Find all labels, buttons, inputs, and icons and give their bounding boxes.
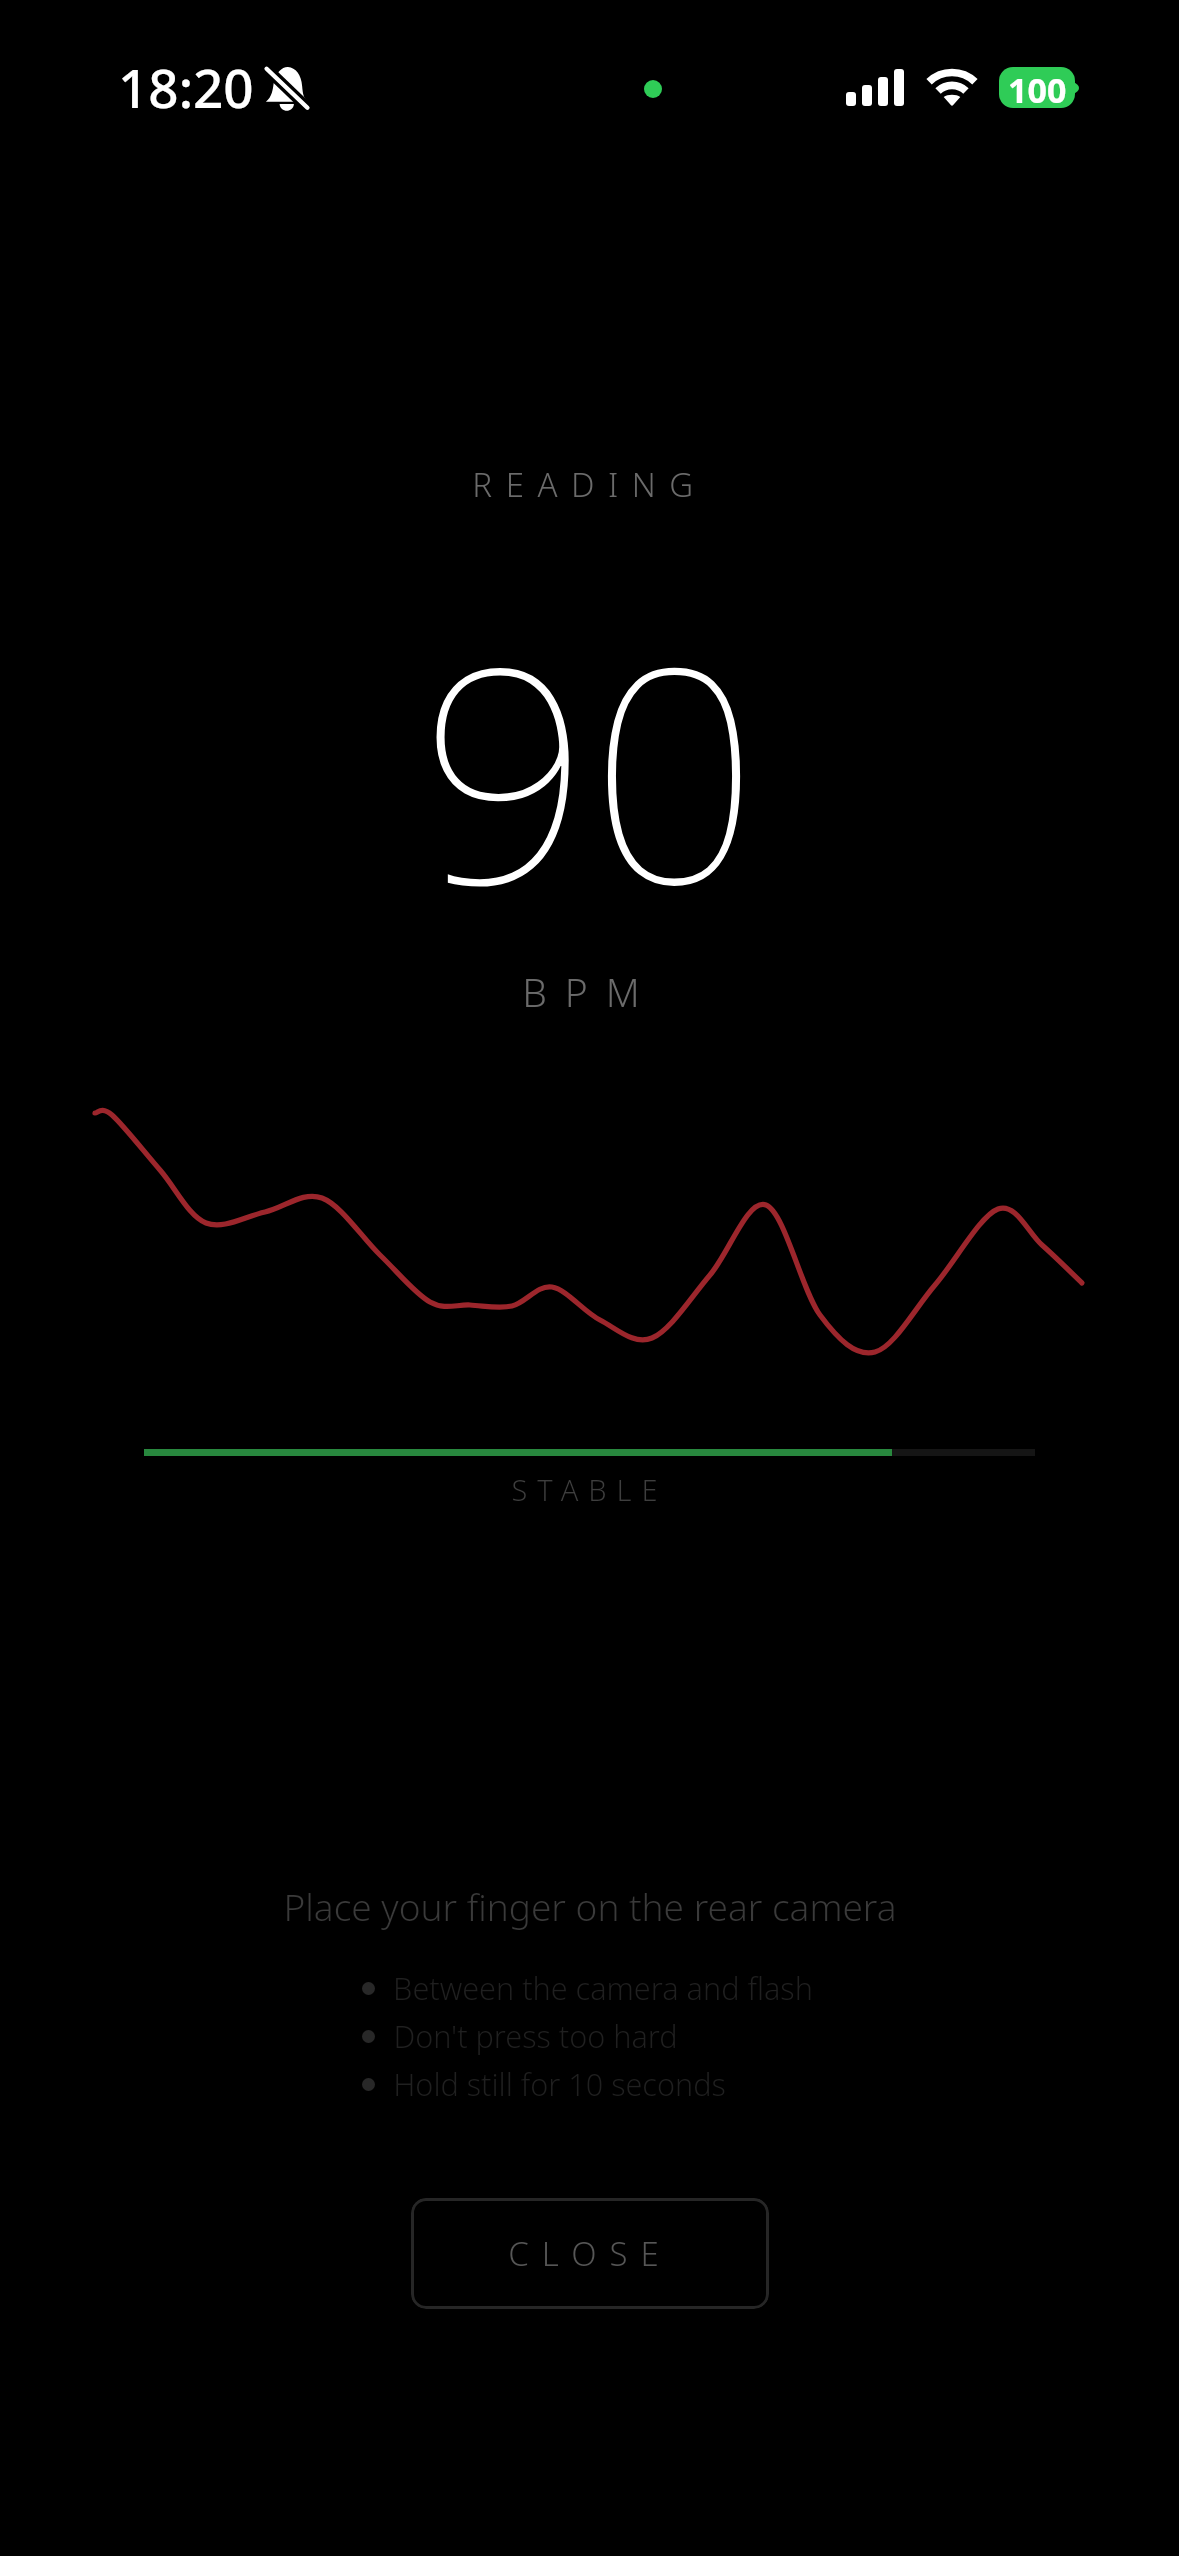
other: Pulse waveform	[0, 1100, 1179, 1400]
staticText: 18:20	[118, 51, 254, 123]
staticText: 90	[420, 566, 759, 971]
staticText: Between the camera and flash	[393, 1967, 813, 2009]
staticText: Hold still for 10 seconds	[393, 2063, 726, 2105]
staticText: CLOSE	[508, 2231, 672, 2276]
other: Notifications silenced	[263, 64, 311, 114]
staticText: BPM	[522, 965, 658, 1018]
staticText: 100	[1008, 67, 1067, 108]
other: Wi-Fi connected	[924, 66, 980, 110]
other: Mobile signal	[845, 66, 905, 108]
button[interactable]: CLOSE	[411, 2198, 769, 2309]
staticText: READING	[472, 462, 707, 507]
staticText: Place your finger on the rear camera	[283, 1881, 897, 1931]
other: Battery 100 percent	[999, 67, 1075, 108]
staticText: Don't press too hard	[393, 2015, 678, 2057]
other: Camera in use	[644, 80, 662, 98]
staticText: STABLE	[511, 1470, 668, 1509]
